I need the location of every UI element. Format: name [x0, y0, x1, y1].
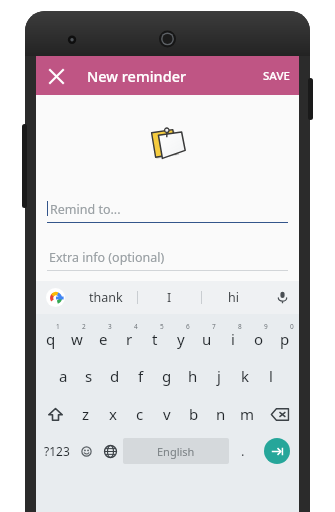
button[interactable]: Change language	[98, 433, 123, 469]
staticText: g	[162, 366, 172, 386]
button[interactable]: h	[180, 356, 206, 395]
staticText: x	[109, 404, 117, 424]
staticText: 0	[290, 322, 294, 331]
button[interactable]: Close	[41, 61, 71, 91]
button[interactable]: z	[73, 395, 99, 433]
button[interactable]: w	[64, 317, 90, 356]
staticText: 6	[186, 322, 190, 331]
staticText: e	[99, 329, 108, 349]
button[interactable]: o	[246, 317, 272, 356]
staticText: k	[241, 366, 250, 386]
button[interactable]: .	[229, 433, 257, 469]
button[interactable]: q	[37, 317, 64, 356]
staticText: New reminder	[87, 66, 187, 86]
staticText: ?123	[44, 443, 70, 459]
staticText: r	[126, 329, 133, 349]
button[interactable]: c	[126, 395, 153, 433]
button[interactable]: ?123	[38, 433, 75, 469]
button[interactable]: g	[154, 356, 180, 395]
button[interactable]: a	[51, 356, 76, 395]
staticText: 3	[108, 322, 112, 331]
staticText: o	[254, 329, 264, 349]
button[interactable]: SAVE	[254, 59, 299, 93]
button[interactable]: n	[207, 395, 234, 433]
button[interactable]: t	[142, 317, 168, 356]
staticText: 4	[134, 322, 138, 331]
staticText: a	[59, 366, 68, 386]
staticText: Extra info (optional)	[49, 249, 165, 266]
button[interactable]: f	[128, 356, 154, 395]
staticText: v	[163, 404, 171, 424]
staticText: j	[217, 366, 221, 386]
button[interactable]: s	[76, 356, 102, 395]
staticText: Remind to...	[50, 201, 121, 218]
button[interactable]: Backspace	[261, 395, 298, 433]
staticText: b	[189, 404, 199, 424]
button[interactable]: English	[123, 438, 229, 464]
button[interactable]: u	[194, 317, 220, 356]
button[interactable]: hi	[202, 281, 265, 314]
button[interactable]: Google search	[36, 281, 74, 314]
staticText: c	[136, 404, 144, 424]
button[interactable]: Voice input	[265, 281, 299, 314]
button[interactable]: d	[102, 356, 128, 395]
staticText: w	[71, 329, 83, 349]
button[interactable]: e	[90, 317, 116, 356]
staticText: 9	[264, 322, 268, 331]
staticText: I	[167, 289, 172, 306]
button[interactable]: Shift	[37, 395, 73, 433]
staticText: 7	[212, 322, 216, 331]
button[interactable]: Emoji	[75, 433, 98, 469]
button[interactable]: l	[258, 356, 284, 395]
staticText: .	[241, 442, 245, 460]
staticText: n	[216, 404, 226, 424]
staticText: m	[240, 404, 255, 424]
staticText: 5	[160, 322, 164, 331]
staticText: SAVE	[263, 68, 290, 84]
button[interactable]: j	[206, 356, 232, 395]
staticText: y	[177, 329, 185, 349]
button[interactable]: k	[232, 356, 258, 395]
button[interactable]: m	[234, 395, 261, 433]
button[interactable]: r	[116, 317, 142, 356]
button[interactable]: I	[138, 281, 201, 314]
button[interactable]: thank	[74, 281, 137, 314]
staticText: English	[157, 444, 195, 459]
staticText: d	[110, 366, 120, 386]
button[interactable]: v	[153, 395, 180, 433]
staticText: t	[152, 329, 158, 349]
staticText: z	[82, 404, 90, 424]
staticText: l	[269, 366, 273, 386]
staticText: hi	[228, 289, 239, 306]
button[interactable]: p	[272, 317, 298, 356]
button[interactable]: Enter	[257, 433, 297, 469]
button[interactable]: Remind to...	[47, 193, 288, 223]
button[interactable]: x	[99, 395, 126, 433]
staticText: s	[85, 366, 93, 386]
staticText: 2	[82, 322, 86, 331]
staticText: f	[138, 366, 144, 386]
staticText: 8	[238, 322, 242, 331]
button[interactable]: Extra info (optional)	[47, 245, 288, 271]
staticText: 1	[56, 322, 60, 331]
staticText: q	[46, 329, 56, 349]
staticText: p	[280, 329, 290, 349]
staticText: h	[188, 366, 198, 386]
staticText: i	[231, 329, 235, 349]
button[interactable]: b	[180, 395, 207, 433]
button[interactable]: i	[220, 317, 246, 356]
staticText: thank	[89, 289, 123, 306]
staticText: u	[202, 329, 212, 349]
button[interactable]: y	[168, 317, 194, 356]
